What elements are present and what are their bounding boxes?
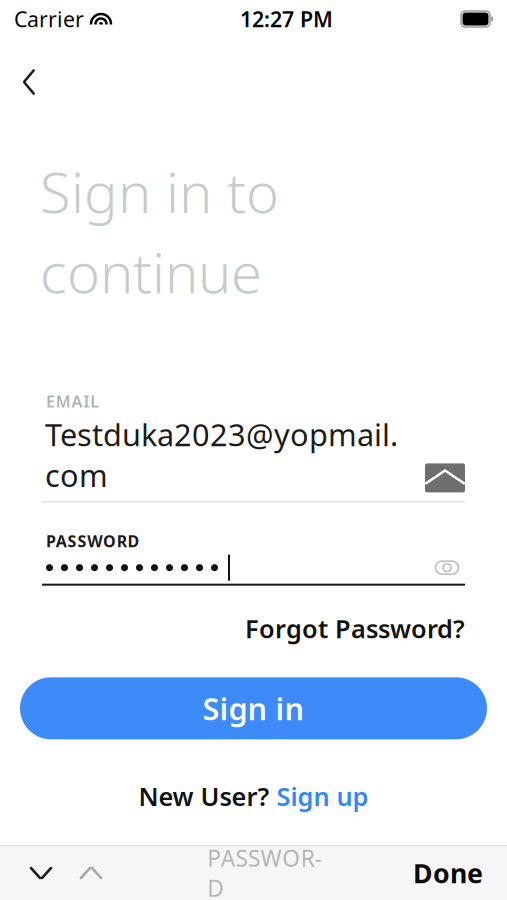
- button[interactable]: Sign in: [20, 677, 487, 739]
- staticText: Sign up: [276, 779, 368, 813]
- staticText: 12:27 PM: [240, 5, 333, 33]
- staticText: Done: [413, 855, 483, 891]
- staticText: PASSWORD: [46, 530, 140, 552]
- staticText: PASSWORD: [207, 843, 322, 900]
- button[interactable]: Previous field: [16, 852, 66, 894]
- staticText: Sign in: [202, 688, 304, 729]
- staticText: EMAIL: [46, 391, 99, 412]
- button[interactable]: Show password: [429, 554, 465, 582]
- staticText: Forgot Password?: [245, 612, 465, 645]
- staticText: Carrier: [14, 5, 84, 33]
- button[interactable]: Sign up: [276, 775, 368, 817]
- staticText: Testduka2023@yopmail.com: [45, 414, 398, 495]
- button[interactable]: Forgot Password?: [245, 606, 465, 651]
- button[interactable]: Back: [0, 56, 40, 108]
- button[interactable]: Next field: [66, 852, 116, 894]
- staticText: New User?: [138, 779, 269, 813]
- button[interactable]: Done: [413, 847, 483, 899]
- staticText: Sign in to continue: [40, 154, 279, 309]
